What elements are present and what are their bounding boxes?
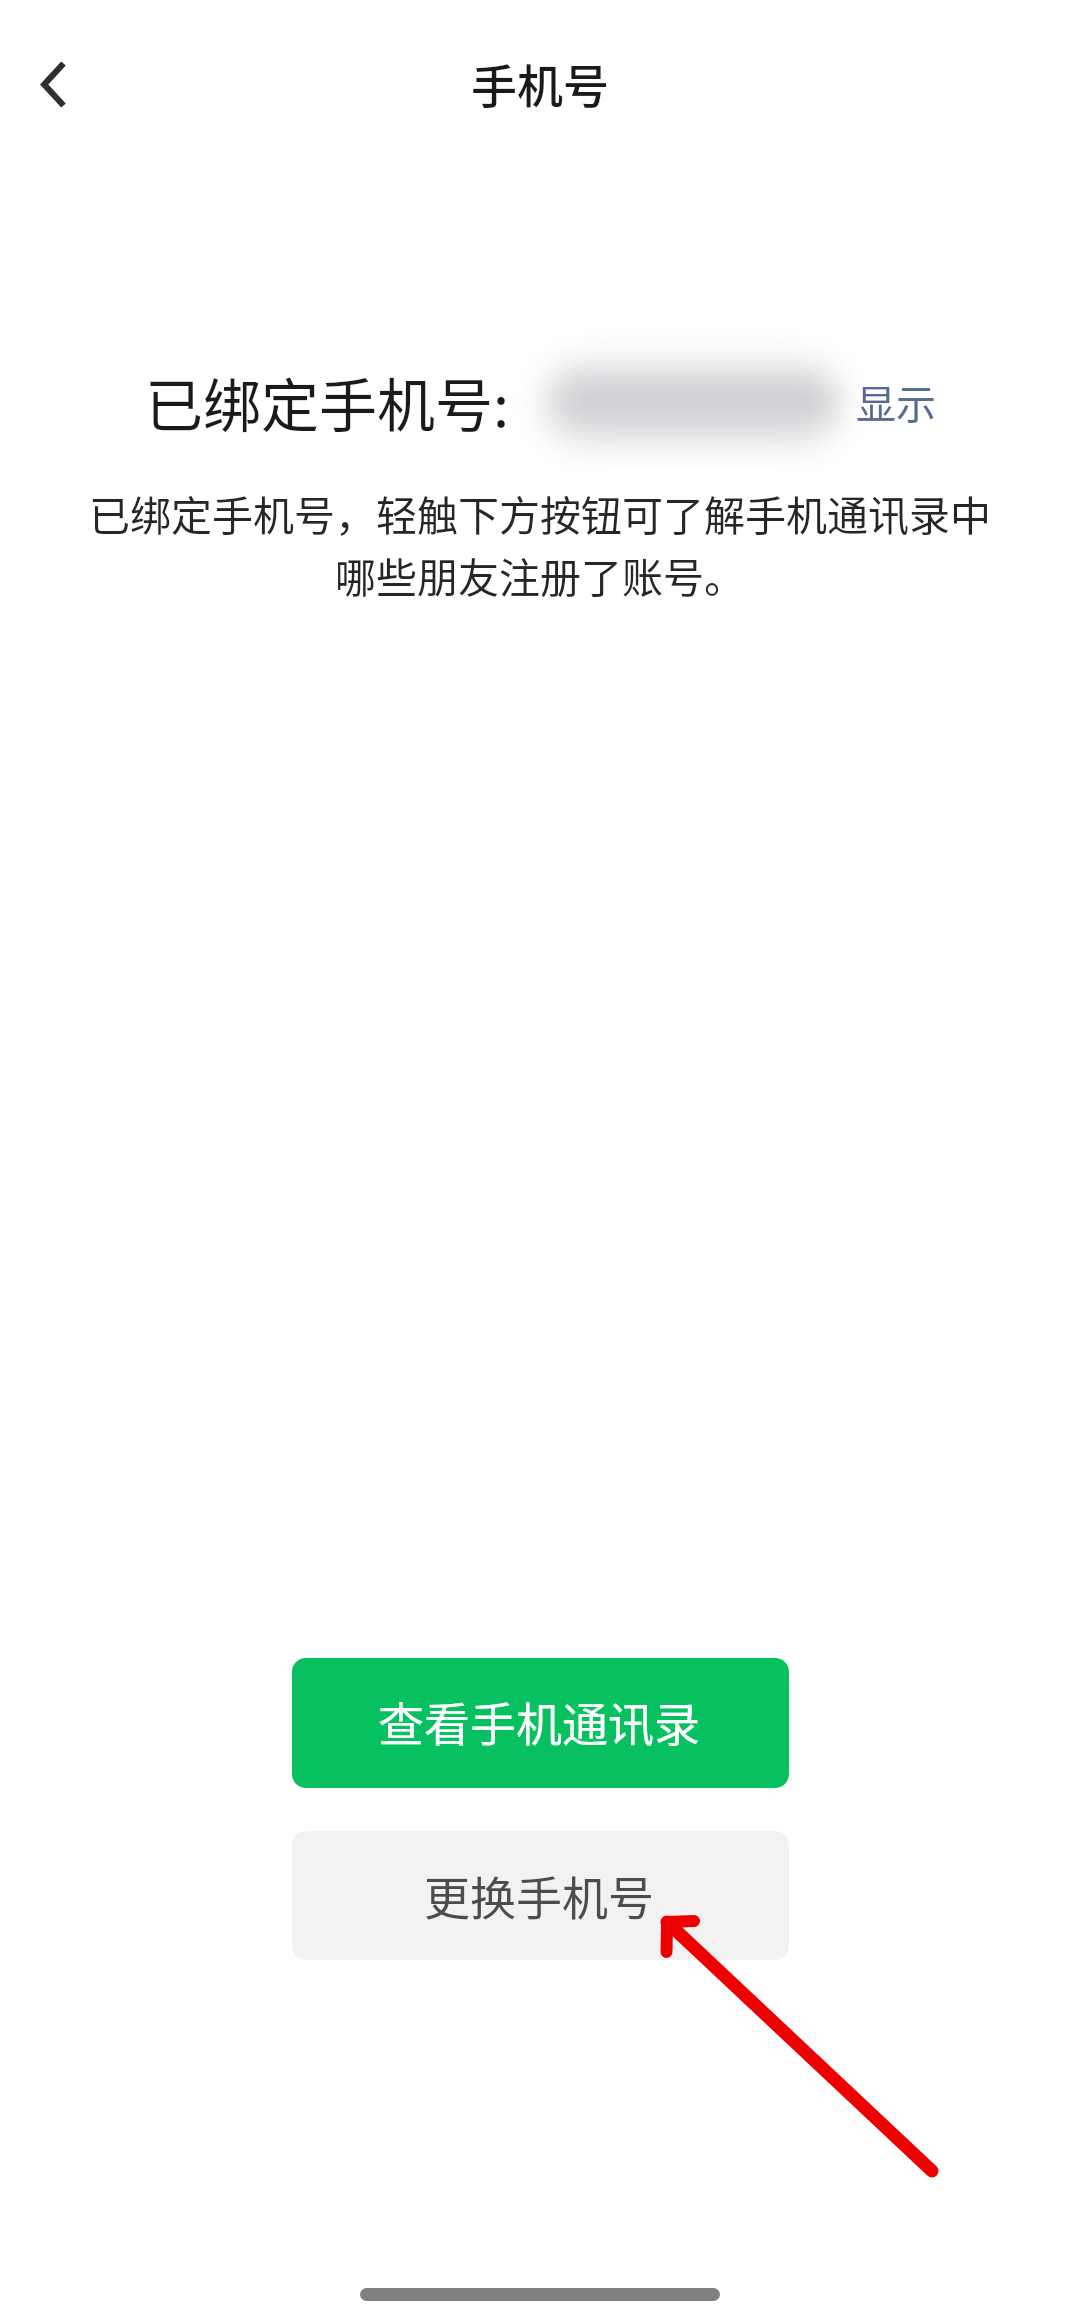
button[interactable]: 查看手机通讯录 (292, 1658, 789, 1788)
staticText: 手机号 (471, 50, 609, 117)
staticText: 显示 (856, 373, 936, 431)
staticText: 已绑定手机号: (145, 360, 510, 444)
staticText: 已绑定手机号，轻触下方按钮可了解手机通讯录中 哪些朋友注册了账号。 (0, 483, 1080, 605)
staticText: 更换手机号 (424, 1862, 654, 1929)
button[interactable]: 显示 (842, 355, 950, 449)
button[interactable]: Back (5, 36, 101, 132)
button[interactable]: 更换手机号 (292, 1831, 789, 1960)
staticText: 查看手机通讯录 (378, 1688, 700, 1755)
